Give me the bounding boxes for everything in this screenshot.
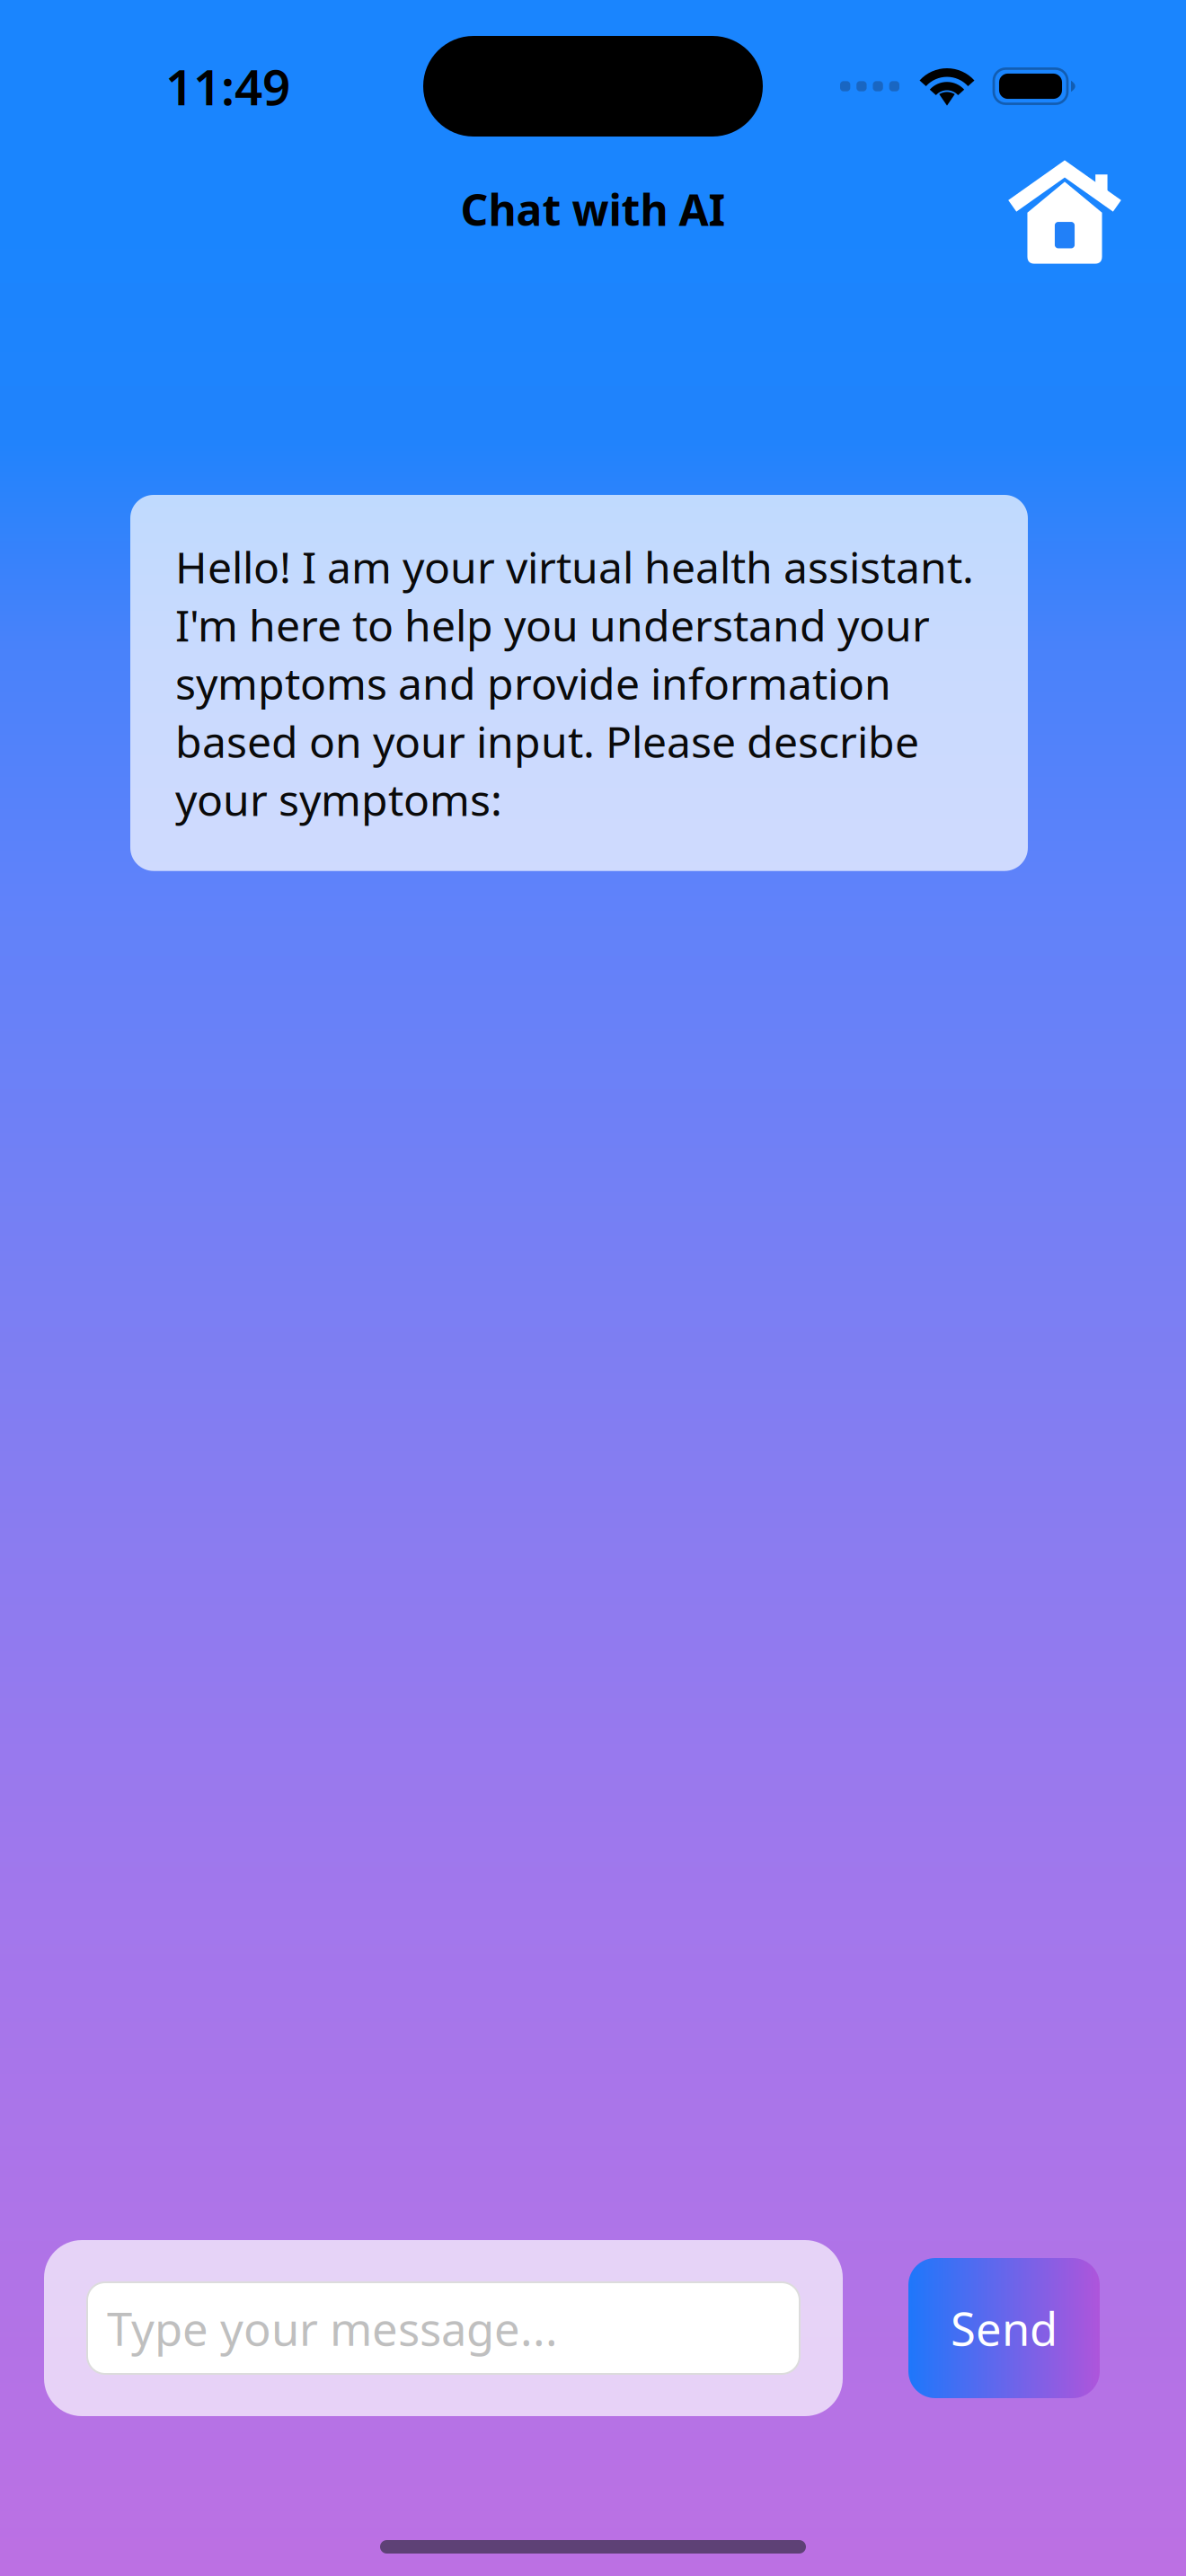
staticText: Type your message... [107, 2298, 558, 2358]
staticText: Hello! I am your virtual health assistan… [175, 538, 974, 828]
button[interactable]: Type your message... [87, 2282, 800, 2374]
staticText: 11:49 [165, 54, 290, 119]
button[interactable]: Send [908, 2258, 1100, 2398]
staticText: Send [951, 2298, 1058, 2358]
button[interactable]: Home [993, 149, 1137, 275]
staticText: Chat with AI [460, 181, 726, 238]
